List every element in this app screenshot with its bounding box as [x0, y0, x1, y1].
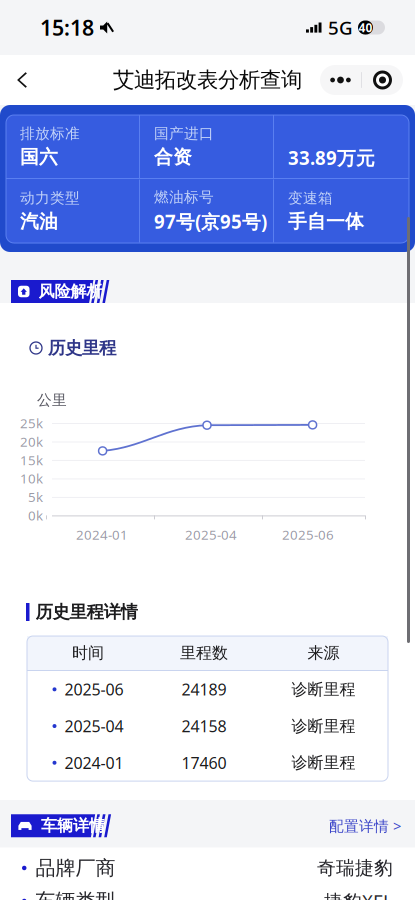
staticText: 公里	[37, 391, 67, 409]
staticText: 诊断里程	[291, 716, 355, 736]
staticText: 动力类型	[20, 189, 80, 207]
staticText: 10k	[20, 470, 43, 487]
staticText: 变速箱	[288, 189, 333, 207]
button[interactable]: Close	[362, 65, 403, 95]
staticText: 来源	[307, 643, 339, 663]
button[interactable]: Back	[0, 55, 42, 105]
staticText: 汽油	[20, 210, 58, 233]
staticText: 手自一体	[288, 210, 364, 233]
button[interactable]: More	[320, 65, 361, 95]
staticText: 风险解析	[38, 282, 102, 301]
staticText: 车辆详情	[41, 816, 105, 836]
staticText: 15k	[20, 451, 43, 469]
staticText: 历史里程	[48, 337, 116, 359]
staticText: 2025-06	[64, 679, 123, 700]
staticText: 艾迪拓改表分析查询	[113, 67, 302, 93]
staticText: 国产进口	[154, 124, 214, 142]
staticText: 25k	[20, 414, 43, 432]
staticText: 配置详情 >	[329, 816, 401, 835]
staticText: 历史里程详情	[35, 601, 137, 623]
staticText: 33.89万元	[288, 145, 375, 170]
staticText: 燃油标号	[154, 188, 214, 206]
staticText: 24158	[181, 715, 226, 737]
staticText: 0k	[28, 506, 43, 524]
staticText: 捷豹XEL	[324, 889, 393, 900]
staticText: 诊断里程	[291, 679, 355, 699]
staticText: 诊断里程	[291, 753, 355, 773]
staticText: 里程数	[180, 643, 228, 663]
staticText: 24189	[181, 679, 226, 700]
button[interactable]: 配置详情 >	[329, 812, 415, 839]
staticText: 奇瑞捷豹	[317, 856, 393, 879]
staticText: 2024-01	[76, 526, 128, 543]
staticText: 时间	[72, 643, 104, 663]
staticText: 5k	[28, 488, 43, 506]
staticText: 97号(京95号)	[154, 209, 267, 234]
staticText: 20k	[20, 433, 43, 450]
staticText: 2024-01	[64, 752, 123, 773]
staticText: 合资	[154, 145, 192, 168]
staticText: 品牌厂商	[35, 856, 115, 880]
staticText: 2025-04	[185, 526, 237, 543]
staticText: 17460	[181, 752, 226, 773]
staticText: 车辆类型	[35, 889, 115, 900]
staticText: 2025-04	[64, 715, 123, 737]
staticText: 15:18	[40, 13, 94, 42]
staticText: 国六	[20, 145, 58, 168]
staticText: 5G	[328, 15, 353, 40]
staticText: 排放标准	[20, 124, 80, 142]
staticText: 2025-06	[282, 526, 334, 543]
staticText: 40	[358, 19, 372, 35]
